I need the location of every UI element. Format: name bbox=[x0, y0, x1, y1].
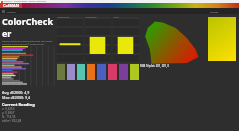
staticText: Session bbox=[7, 10, 16, 13]
staticText: cd/m²: 392,48 bbox=[2, 119, 22, 123]
staticText: Display analysis is performed with the X… bbox=[2, 39, 53, 42]
staticText: ColorChecker bbox=[2, 15, 54, 39]
staticText: Color bbox=[113, 15, 139, 18]
staticText: Avg dE2000: 4,9 bbox=[2, 90, 50, 95]
staticText: x: 0,4253 bbox=[2, 107, 15, 111]
staticText: Luminance bbox=[57, 15, 83, 18]
staticText: fL: 114,55 bbox=[2, 115, 16, 119]
staticText: Max dE2000: 9,4 bbox=[2, 95, 50, 100]
staticText: Pantone ColorChecker® target colors. bbox=[2, 42, 45, 45]
staticText: CalMAN bbox=[3, 3, 19, 8]
staticText: Current Reading bbox=[2, 102, 35, 107]
staticText: Display bbox=[210, 10, 219, 13]
staticText: CalMAN - ColorChecker - Display Calibrat… bbox=[4, 0, 47, 3]
staticText: y: 0,4967 bbox=[2, 111, 15, 115]
staticText: RGB Triplet: 201, 201, 0 bbox=[140, 64, 235, 68]
staticText: Saturation bbox=[85, 15, 111, 18]
